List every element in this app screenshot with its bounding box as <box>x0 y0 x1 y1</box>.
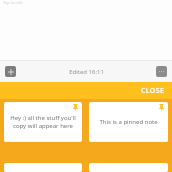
button[interactable]: Pinned <box>158 104 165 111</box>
staticText: Hey :) all the stuff you'll copy will ap… <box>10 114 76 130</box>
button[interactable]: More options <box>156 66 167 77</box>
button[interactable]: Pinned <box>72 104 79 111</box>
staticText: This is a pinned note <box>99 118 158 126</box>
button[interactable] <box>4 163 82 172</box>
staticText: Edited 16:11 <box>69 68 104 76</box>
button[interactable]: This is a pinned note <box>89 102 168 142</box>
button[interactable] <box>89 163 168 172</box>
button[interactable]: CLOSE <box>134 83 172 99</box>
button[interactable]: Add attachment <box>5 66 16 77</box>
staticText: CLOSE <box>141 86 165 96</box>
button[interactable]: Hey :) all the stuff you'll copy will ap… <box>4 102 82 142</box>
staticText: Tap to edit <box>3 0 23 5</box>
